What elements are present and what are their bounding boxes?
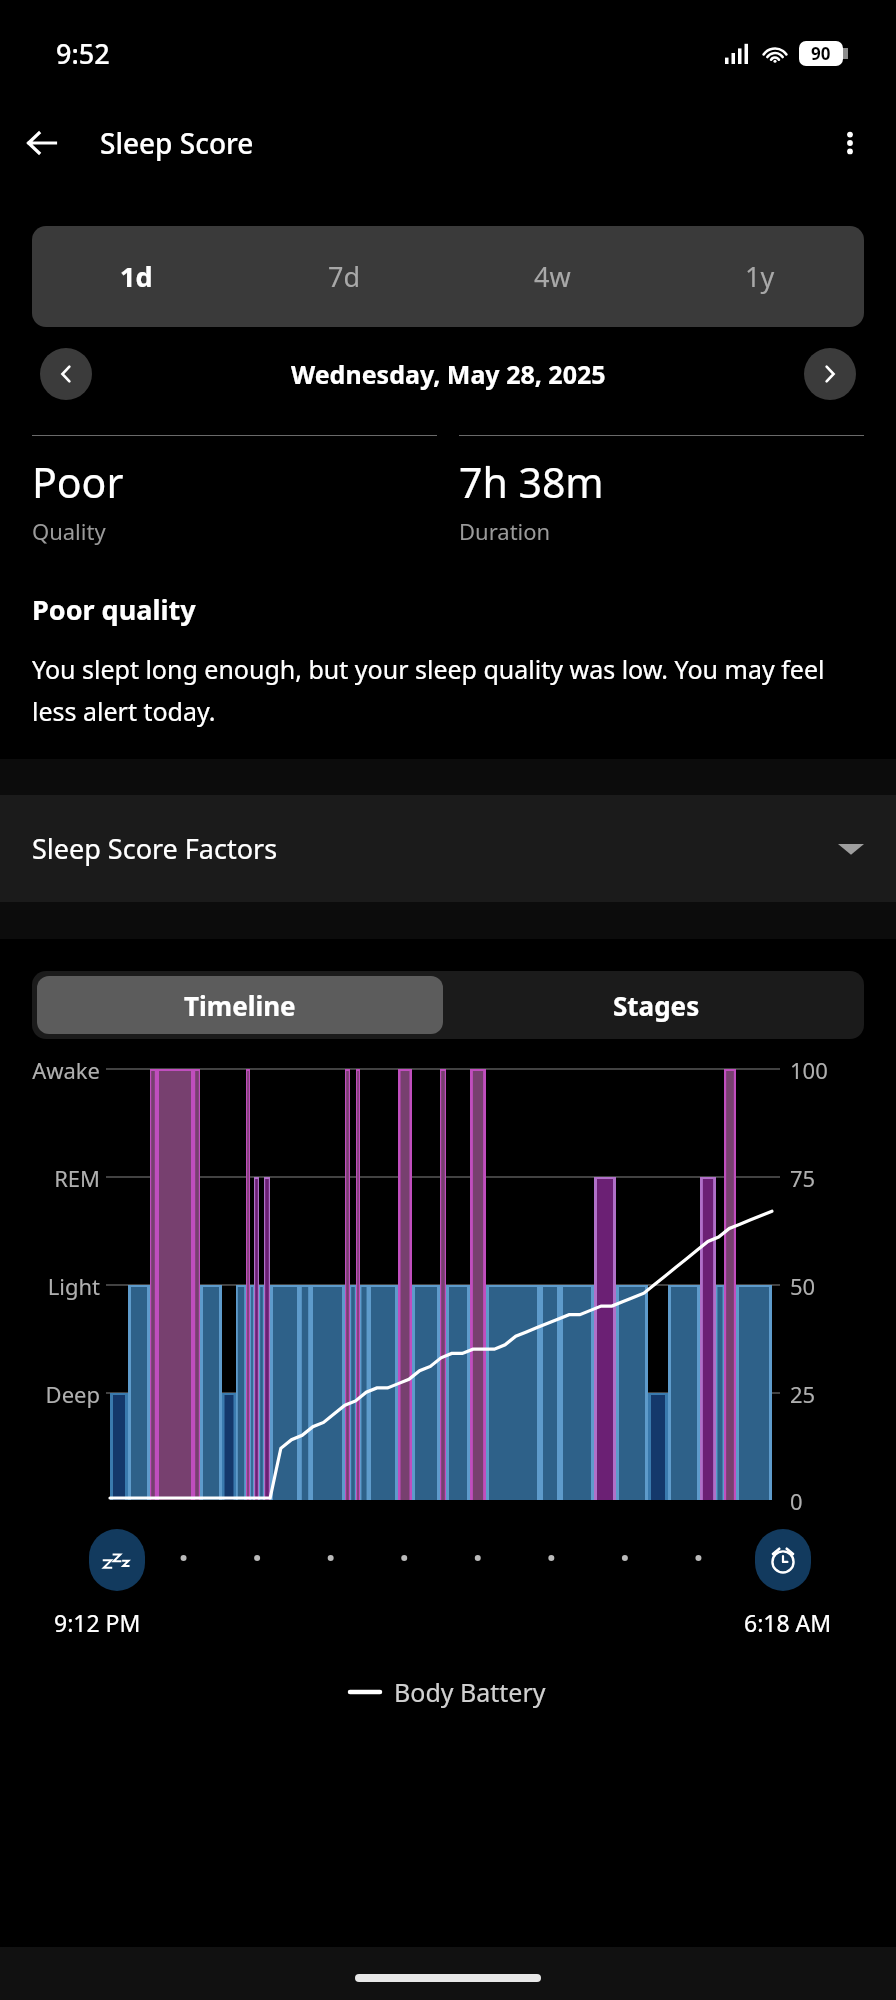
button[interactable]: Sleep Score Factors (0, 795, 896, 902)
button[interactable]: Wake time (755, 1529, 811, 1591)
staticText: 6:18 AM (744, 1607, 832, 1638)
staticText: Awake (0, 1055, 100, 1085)
button[interactable]: More options (822, 115, 878, 171)
staticText: 75 (790, 1163, 816, 1193)
staticText: 7h 38m (459, 454, 604, 510)
button[interactable]: 7d (240, 226, 448, 327)
button[interactable]: Timeline (37, 976, 443, 1034)
staticText: Light (0, 1271, 100, 1301)
staticText: Poor quality (32, 591, 196, 628)
button[interactable]: 1y (656, 226, 864, 327)
staticText: You slept long enough, but your sleep qu… (32, 652, 864, 728)
button[interactable]: 7h 38m (459, 435, 864, 546)
staticText: 9:52 (56, 35, 110, 72)
button[interactable]: Back (14, 115, 70, 171)
staticText: Sleep Score Factors (32, 830, 278, 867)
staticText: 0 (790, 1486, 803, 1516)
staticText: 1y (745, 258, 775, 295)
staticText: Sleep Score (100, 124, 254, 162)
staticText: 4w (534, 258, 571, 295)
button[interactable]: Bedtime (89, 1529, 145, 1591)
staticText: 100 (790, 1055, 828, 1085)
staticText: 90 (811, 42, 831, 65)
staticText: Stages (613, 988, 700, 1023)
staticText: Poor (32, 454, 124, 510)
button[interactable]: 1d (32, 226, 240, 327)
button[interactable]: Next day (804, 348, 856, 400)
staticText: REM (0, 1163, 100, 1193)
button[interactable]: 4w (448, 226, 656, 327)
staticText: Duration (459, 516, 551, 546)
staticText: 7d (328, 258, 361, 295)
button[interactable]: Previous day (40, 348, 92, 400)
staticText: Wednesday, May 28, 2025 (291, 357, 606, 391)
staticText: Quality (32, 516, 106, 546)
staticText: Body Battery (394, 1675, 546, 1709)
staticText: 25 (790, 1379, 816, 1409)
staticText: 1d (120, 258, 153, 295)
button[interactable]: Poor (32, 435, 437, 546)
staticText: 50 (790, 1271, 816, 1301)
staticText: Deep (0, 1379, 100, 1409)
staticText: 9:12 PM (54, 1607, 141, 1638)
staticText: Timeline (184, 988, 296, 1023)
button[interactable]: Stages (448, 971, 864, 1039)
